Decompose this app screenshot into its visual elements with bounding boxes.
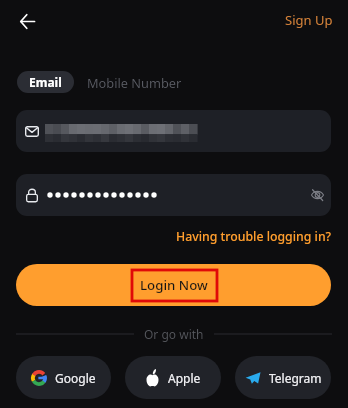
button[interactable]: [16, 110, 331, 152]
staticText: Apple: [168, 370, 201, 386]
button[interactable]: Telegram: [235, 356, 331, 399]
button[interactable]: Google: [16, 356, 111, 399]
staticText: Google: [55, 370, 96, 386]
staticText: Having trouble logging in?: [176, 228, 332, 245]
button[interactable]: Apple: [125, 356, 221, 399]
staticText: Or go with: [144, 326, 204, 342]
staticText: Sign Up: [285, 11, 333, 29]
staticText: Telegram: [269, 370, 322, 386]
staticText: Mobile Number: [87, 74, 182, 91]
staticText: Login Now: [140, 276, 208, 294]
button[interactable]: Mobile Number: [74, 71, 195, 93]
button[interactable]: Back: [11, 5, 43, 37]
button[interactable]: Show password: [304, 182, 330, 208]
button[interactable]: Sign Up: [279, 7, 339, 33]
button[interactable]: Email: [17, 71, 74, 93]
button[interactable]: Having trouble logging in?: [176, 225, 332, 248]
button[interactable]: Login Now: [16, 264, 331, 306]
button[interactable]: Show password: [16, 174, 331, 216]
staticText: Email: [29, 74, 62, 90]
